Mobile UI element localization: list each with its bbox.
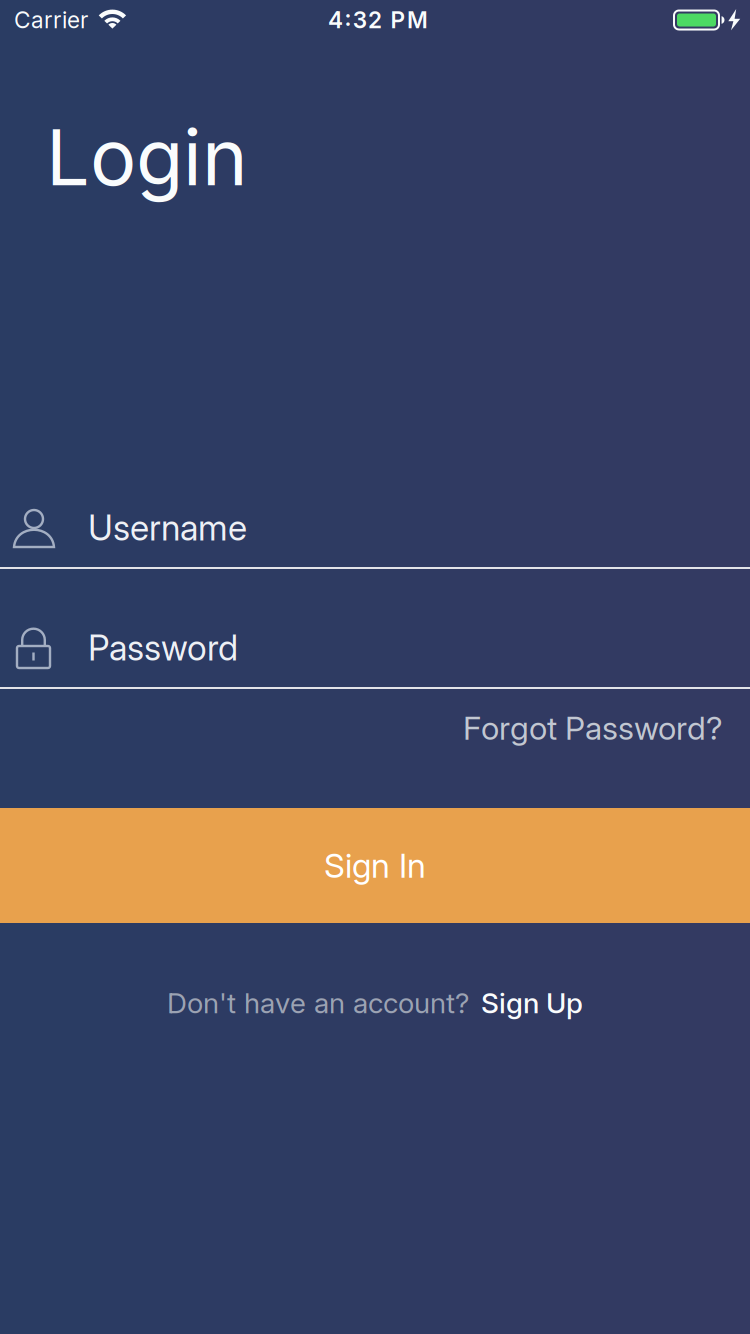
staticText: Don't have an account?	[167, 986, 469, 1019]
staticText: Carrier	[14, 7, 88, 33]
button[interactable]: Username	[0, 480, 750, 576]
staticText: 4:32 PM	[328, 7, 428, 33]
button[interactable]: Forgot Password?	[0, 709, 750, 747]
staticText: Sign In	[324, 846, 426, 885]
button[interactable]: Sign Up	[481, 986, 583, 1019]
staticText: Sign Up	[481, 986, 583, 1019]
staticText: Login	[46, 111, 248, 203]
button[interactable]: Password	[0, 600, 750, 696]
staticText: Username	[88, 508, 247, 548]
button[interactable]: Sign In	[0, 808, 750, 923]
staticText: Forgot Password?	[463, 709, 723, 747]
staticText: Password	[88, 628, 238, 668]
